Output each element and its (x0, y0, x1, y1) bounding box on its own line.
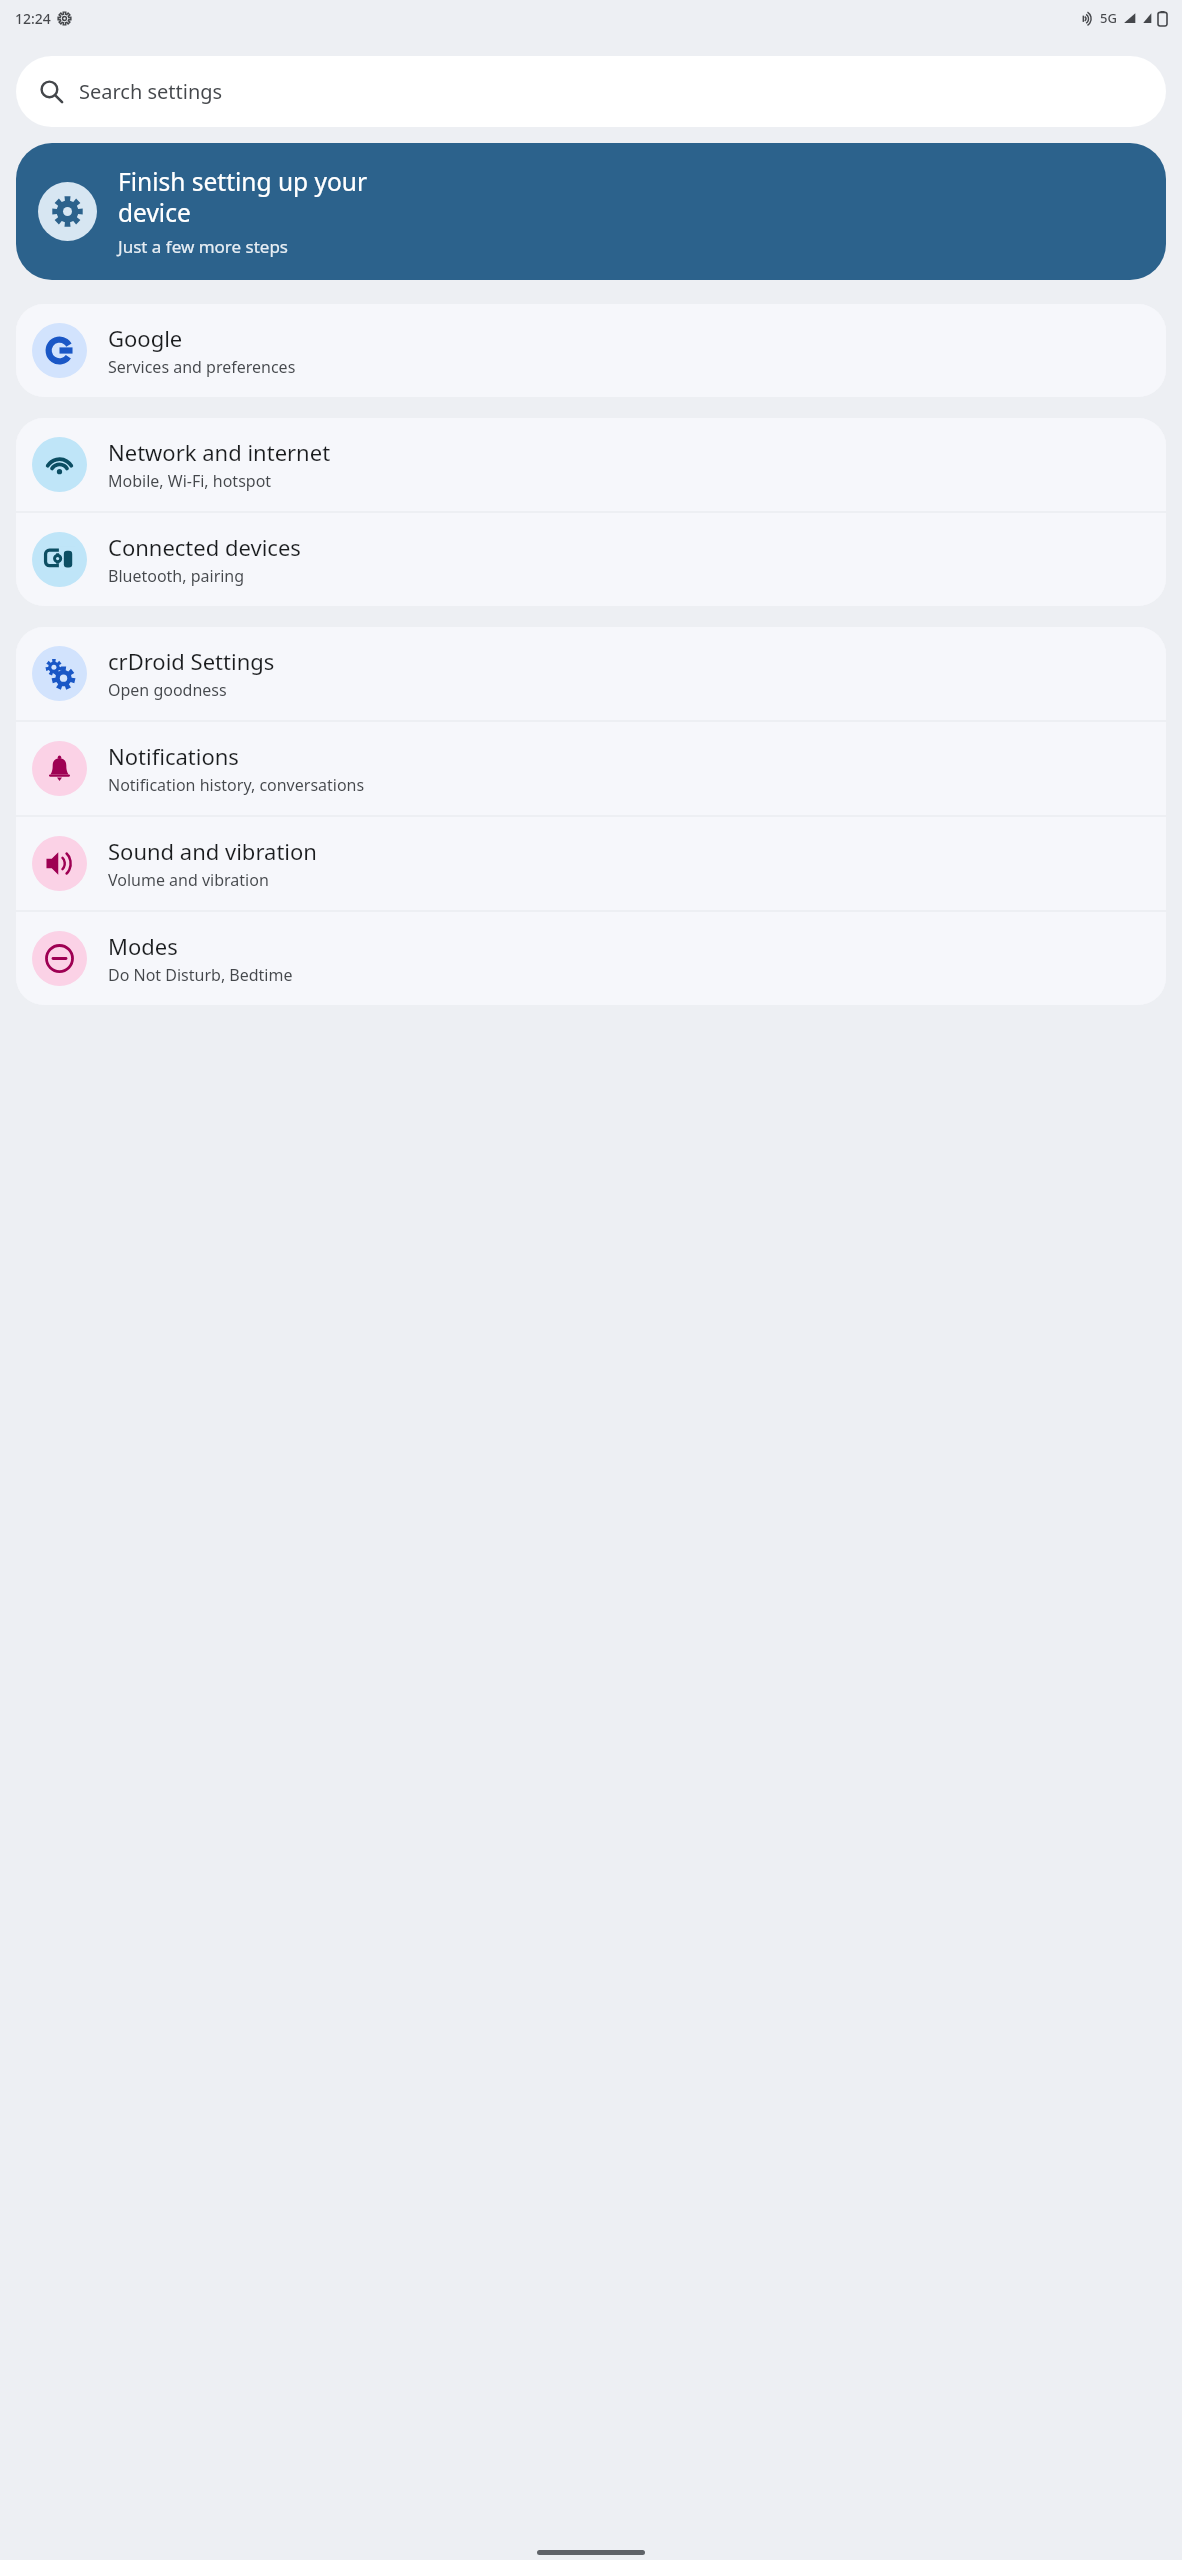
button[interactable]: Finish setting up your device (16, 143, 1166, 280)
staticText: Modes (108, 931, 178, 961)
staticText: Just a few more steps (118, 235, 289, 258)
button[interactable]: Sound and vibration (16, 817, 1166, 910)
staticText: Mobile, Wi-Fi, hotspot (108, 470, 272, 492)
button[interactable]: Notifications (16, 722, 1166, 815)
staticText: Google (108, 323, 183, 353)
staticText: Search settings (79, 78, 223, 105)
button[interactable]: Search settings (16, 56, 1166, 127)
staticText: Connected devices (108, 532, 301, 562)
staticText: Services and preferences (108, 356, 296, 378)
staticText: Notification history, conversations (108, 774, 365, 796)
staticText: Bluetooth, pairing (108, 565, 245, 587)
button[interactable]: Google (16, 304, 1166, 397)
staticText: Volume and vibration (108, 869, 269, 891)
staticText: Sound and vibration (108, 836, 317, 866)
staticText: Finish setting up your device (118, 165, 368, 230)
button[interactable]: crDroid Settings (16, 627, 1166, 720)
staticText: Notifications (108, 741, 239, 771)
staticText: 12:24 (15, 9, 51, 28)
staticText: crDroid Settings (108, 646, 275, 676)
staticText: 5G (1100, 9, 1117, 27)
staticText: Network and internet (108, 437, 331, 467)
button[interactable]: Connected devices (16, 513, 1166, 606)
button[interactable]: Network and internet (16, 418, 1166, 511)
button[interactable]: Modes (16, 912, 1166, 1005)
staticText: Do Not Disturb, Bedtime (108, 964, 293, 986)
staticText: Open goodness (108, 679, 227, 701)
